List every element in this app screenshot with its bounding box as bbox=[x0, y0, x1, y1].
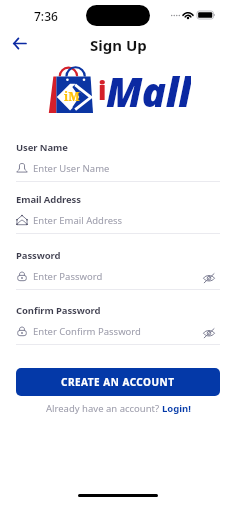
button[interactable]: Back bbox=[5, 30, 34, 56]
staticText: Mall bbox=[106, 64, 191, 112]
button[interactable]: CREATE AN ACCOUNT bbox=[16, 368, 220, 396]
staticText: 7:36 bbox=[34, 8, 58, 24]
staticText: Sign Up bbox=[90, 35, 147, 55]
staticText: Enter User Name bbox=[33, 162, 220, 175]
staticText: i bbox=[98, 72, 107, 107]
button[interactable]: Show password bbox=[203, 269, 220, 283]
staticText: iM bbox=[64, 88, 80, 104]
button[interactable]: Login! bbox=[162, 402, 191, 415]
button[interactable]: Show password bbox=[203, 324, 220, 338]
staticText: Enter Email Address bbox=[33, 214, 220, 227]
staticText: User Name bbox=[16, 141, 68, 154]
staticText: Password bbox=[16, 249, 61, 262]
staticText: Already have an account? bbox=[46, 402, 162, 415]
staticText: Email Address bbox=[16, 193, 81, 206]
staticText: Confirm Password bbox=[16, 304, 101, 317]
staticText: Enter Confirm Password bbox=[33, 325, 203, 338]
staticText: Enter Password bbox=[33, 270, 203, 283]
staticText: CREATE AN ACCOUNT bbox=[61, 375, 175, 389]
